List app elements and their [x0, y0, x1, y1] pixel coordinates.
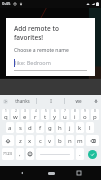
staticText: 3 [24, 109, 26, 113]
button[interactable]: Back [16, 167, 28, 179]
staticText: d [28, 124, 32, 132]
button[interactable]: Enter [86, 148, 99, 160]
button[interactable]: g [46, 122, 54, 133]
staticText: v [48, 137, 52, 145]
button[interactable]: Expand toolbar [1, 97, 9, 105]
button[interactable]: 9 [81, 109, 89, 120]
staticText: g [48, 124, 52, 132]
staticText: i [74, 113, 76, 120]
staticText: k [78, 124, 82, 132]
staticText: y [53, 113, 57, 120]
button[interactable]: 3 [21, 109, 29, 120]
button[interactable]: Home [45, 167, 57, 179]
staticText: 6 [54, 109, 56, 113]
staticText: s [19, 124, 22, 132]
button[interactable]: 6 [51, 109, 59, 120]
staticText: j [69, 124, 71, 132]
button[interactable]: Recent apps [73, 167, 85, 179]
staticText: x [28, 137, 32, 145]
staticText: z [19, 137, 22, 145]
staticText: w [13, 113, 18, 120]
button[interactable]: n [66, 135, 74, 146]
button[interactable]: a [6, 122, 14, 133]
staticText: I [50, 98, 52, 104]
staticText: 4 [35, 109, 37, 113]
button[interactable]: m [76, 135, 84, 146]
button[interactable]: k [76, 122, 84, 133]
staticText: 5 [45, 109, 47, 113]
button[interactable]: f [36, 122, 44, 133]
button[interactable]: 7 [61, 109, 69, 120]
button[interactable]: v [46, 135, 54, 146]
button[interactable]: thanks [9, 95, 36, 107]
button[interactable]: x [26, 135, 34, 146]
staticText: p [93, 113, 97, 120]
staticText: thanks [15, 98, 30, 104]
staticText: u [63, 113, 67, 120]
button[interactable]: we [65, 95, 92, 107]
button[interactable]: Key [86, 135, 99, 146]
staticText: 9 [84, 109, 86, 113]
staticText: 1 [5, 109, 7, 113]
staticText: h [58, 124, 62, 132]
staticText: we [75, 98, 82, 104]
button[interactable]: c [36, 135, 44, 146]
staticText: 7 [64, 109, 66, 113]
staticText: e [23, 113, 27, 120]
button[interactable]: b [56, 135, 64, 146]
button[interactable]: h [56, 122, 64, 133]
button[interactable]: . [76, 148, 84, 160]
button[interactable]: s [16, 122, 24, 133]
button[interactable]: 8 [71, 109, 79, 120]
staticText: m [77, 137, 83, 145]
button[interactable]: like: Bedroom [14, 59, 87, 71]
staticText: f [39, 124, 42, 132]
button[interactable]: 4 [31, 109, 39, 120]
button[interactable]: 0 [91, 109, 99, 120]
staticText: b [58, 137, 62, 145]
staticText: q [4, 113, 8, 120]
staticText: ?123 [3, 151, 13, 157]
button[interactable]: Key [26, 148, 34, 160]
button[interactable]: d [26, 122, 34, 133]
button[interactable]: 5 [41, 109, 49, 120]
button[interactable]: Space [36, 148, 74, 160]
staticText: o [83, 113, 87, 120]
staticText: Choose a remote name [14, 47, 69, 54]
button[interactable]: 2 [11, 109, 19, 120]
staticText: n [68, 137, 72, 145]
staticText: t [44, 113, 47, 120]
staticText: like: Bedroom [15, 59, 51, 66]
button[interactable]: Key [2, 135, 14, 146]
button[interactable]: l [86, 122, 94, 133]
button[interactable]: j [66, 122, 74, 133]
staticText: 0 [94, 109, 96, 113]
staticText: . [79, 150, 81, 158]
staticText: , [19, 150, 21, 158]
button[interactable]: 1 [2, 109, 9, 120]
button[interactable]: , [16, 148, 24, 160]
staticText: c [39, 137, 42, 145]
button[interactable]: ?123 [2, 148, 14, 160]
staticText: 8 [74, 109, 76, 113]
button[interactable]: I [37, 95, 64, 107]
staticText: l [89, 124, 91, 132]
staticText: Add remote to favorites! [14, 24, 89, 42]
staticText: a [8, 124, 12, 132]
staticText: 2 [15, 109, 17, 113]
staticText: 0:45 [2, 1, 11, 7]
button[interactable]: z [16, 135, 24, 146]
button[interactable]: Voice input [92, 97, 100, 105]
staticText: r [34, 113, 37, 120]
